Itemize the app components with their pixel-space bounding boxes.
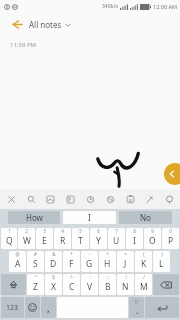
staticText: Q xyxy=(6,235,13,247)
button[interactable]: - xyxy=(81,251,98,272)
button[interactable]: , xyxy=(41,297,56,318)
staticText: 4 xyxy=(61,228,64,234)
staticText: 11:59 PM xyxy=(10,41,36,49)
button[interactable]: Close xyxy=(2,190,20,208)
button[interactable]: Search xyxy=(22,190,40,208)
staticText: Y xyxy=(96,235,101,247)
button[interactable]: * xyxy=(63,251,80,272)
button[interactable]: 1 xyxy=(1,228,17,249)
staticText: G xyxy=(86,258,93,270)
staticText: R xyxy=(60,235,66,247)
staticText: Z xyxy=(33,281,38,293)
button[interactable]: ! xyxy=(117,274,134,295)
staticText: 2 xyxy=(25,228,28,234)
button[interactable]: 5 xyxy=(72,228,89,249)
staticText: 340b/s xyxy=(102,3,118,10)
staticText: E xyxy=(42,235,47,247)
staticText: 12:00 AM xyxy=(153,3,177,10)
staticText: ^ xyxy=(70,274,73,280)
staticText: , xyxy=(47,302,50,314)
staticText: C xyxy=(69,281,75,293)
button[interactable]: Expand tools xyxy=(164,163,180,185)
staticText: M xyxy=(140,281,148,293)
button[interactable]: Attach file xyxy=(61,190,79,208)
staticText: T xyxy=(78,235,83,247)
button[interactable]: All notes xyxy=(29,19,71,30)
staticText: All notes xyxy=(29,19,62,30)
button[interactable]: 6 xyxy=(90,228,107,249)
button[interactable]: @ xyxy=(9,251,26,272)
staticText: D xyxy=(50,258,57,270)
staticText: - xyxy=(89,251,91,257)
button[interactable]: Emoji xyxy=(25,297,40,318)
button[interactable]: Insert image xyxy=(41,190,59,208)
staticText: W xyxy=(23,235,31,247)
staticText: P xyxy=(168,235,174,247)
button[interactable]: 9 xyxy=(144,228,161,249)
button[interactable]: + xyxy=(99,251,116,272)
button[interactable]: No xyxy=(119,211,172,224)
staticText: A xyxy=(15,258,21,270)
button[interactable]: ; xyxy=(99,274,116,295)
button[interactable]: Pin xyxy=(140,190,158,208)
staticText: !? xyxy=(135,299,139,305)
button[interactable]: Backspace xyxy=(153,274,179,295)
button[interactable]: & xyxy=(45,251,62,272)
button[interactable]: Color xyxy=(101,190,119,208)
button[interactable]: How xyxy=(8,211,60,224)
button[interactable]: I xyxy=(63,211,116,224)
button[interactable]: Shift xyxy=(1,274,26,295)
staticText: @ xyxy=(15,251,20,257)
button[interactable]: ) xyxy=(153,251,170,272)
button[interactable]: 4 xyxy=(54,228,71,249)
button[interactable]: : xyxy=(81,274,98,295)
staticText: ! xyxy=(125,274,127,280)
staticText: V xyxy=(87,281,93,293)
staticText: B xyxy=(105,281,111,293)
button[interactable]: 2 xyxy=(18,228,35,249)
staticText: N xyxy=(122,281,129,293)
button[interactable]: Location xyxy=(160,190,178,208)
staticText: F xyxy=(69,258,74,270)
staticText: 5 xyxy=(79,228,82,234)
button[interactable]: Checklist xyxy=(121,190,139,208)
staticText: X xyxy=(51,281,56,293)
staticText: No xyxy=(140,212,151,223)
staticText: S xyxy=(33,258,38,270)
staticText: 6 xyxy=(97,228,100,234)
button[interactable]: Period xyxy=(129,297,144,318)
staticText: & xyxy=(52,251,56,257)
button[interactable]: " xyxy=(27,274,44,295)
button[interactable]: 0 xyxy=(162,228,179,249)
button[interactable]: Back xyxy=(6,14,26,34)
staticText: I xyxy=(88,212,91,223)
staticText: L xyxy=(159,258,164,270)
staticText: / xyxy=(143,274,145,280)
staticText: How xyxy=(26,212,43,223)
staticText: 123 xyxy=(6,303,19,313)
staticText: ) xyxy=(161,251,163,257)
button[interactable]: Enter xyxy=(145,297,179,318)
button[interactable]: / xyxy=(135,274,152,295)
button[interactable]: ( xyxy=(135,251,152,272)
staticText: : xyxy=(89,274,91,280)
button[interactable]: Reminder xyxy=(81,190,99,208)
staticText: + xyxy=(106,251,109,257)
staticText: O xyxy=(149,235,156,247)
button[interactable]: $ xyxy=(45,274,62,295)
button[interactable]: 8 xyxy=(126,228,143,249)
staticText: 7 xyxy=(115,228,118,234)
staticText: I xyxy=(133,235,136,247)
staticText: H xyxy=(104,258,111,270)
button[interactable]: ^ xyxy=(63,274,80,295)
button[interactable]: Numbers xyxy=(1,297,24,318)
staticText: ( xyxy=(143,251,145,257)
staticText: U xyxy=(113,235,120,247)
staticText: * xyxy=(70,251,73,257)
button[interactable]: 7 xyxy=(108,228,125,249)
staticText: . xyxy=(136,305,139,316)
button[interactable]: 3 xyxy=(36,228,53,249)
button[interactable]: = xyxy=(117,251,134,272)
button[interactable]: # xyxy=(27,251,44,272)
